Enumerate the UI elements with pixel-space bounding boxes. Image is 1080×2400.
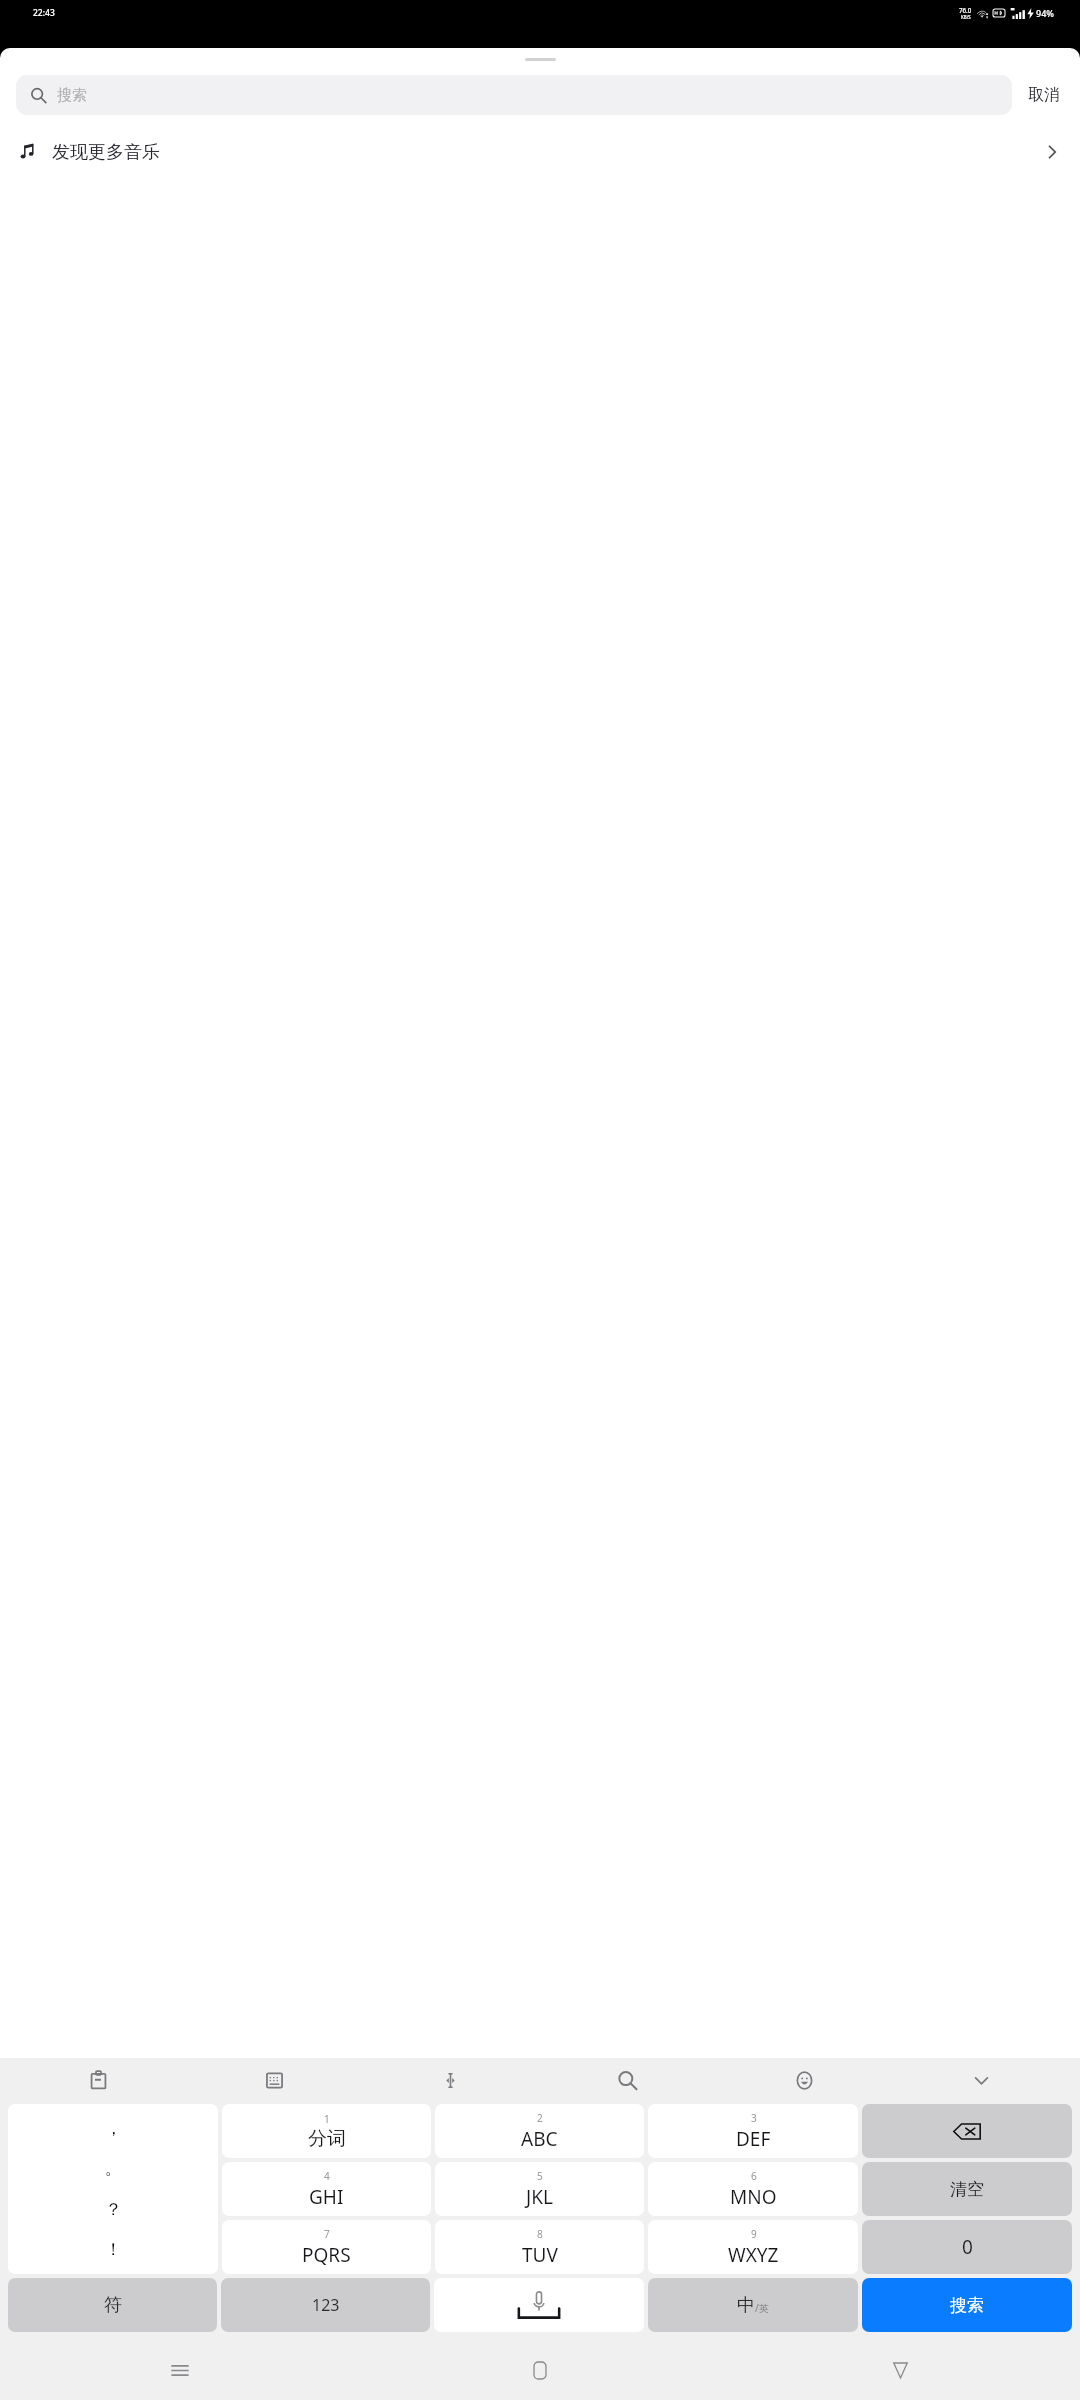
- staticText: 1: [324, 2112, 330, 2126]
- staticText: /英: [755, 2301, 769, 2315]
- button[interactable]: 清空: [862, 2162, 1072, 2216]
- staticText: 94%: [1036, 7, 1054, 19]
- staticText: PQRS: [302, 2242, 351, 2268]
- staticText: 发现更多音乐: [52, 141, 160, 164]
- staticText: 0: [962, 2234, 973, 2260]
- button[interactable]: 取消: [1012, 77, 1064, 113]
- staticText: ，: [105, 2118, 122, 2139]
- staticText: 。: [105, 2158, 122, 2179]
- staticText: 搜索: [57, 86, 87, 105]
- button[interactable]: ，: [8, 2104, 218, 2274]
- button[interactable]: Hide keyboard: [893, 2058, 1070, 2102]
- staticText: 5: [537, 2169, 543, 2183]
- staticText: 6: [751, 2169, 757, 2183]
- button[interactable]: 8: [435, 2220, 644, 2274]
- staticText: 中: [737, 2294, 755, 2317]
- staticText: 符: [104, 2294, 122, 2317]
- button[interactable]: 123: [221, 2278, 430, 2332]
- staticText: 22:43: [33, 7, 55, 19]
- staticText: 分词: [308, 2127, 346, 2151]
- staticText: GHI: [309, 2184, 344, 2210]
- staticText: KB/S: [961, 14, 971, 20]
- button[interactable]: Emoji: [716, 2058, 893, 2102]
- button[interactable]: 2: [435, 2104, 644, 2158]
- staticText: TUV: [522, 2242, 558, 2268]
- button[interactable]: Home: [360, 2340, 720, 2400]
- staticText: 清空: [950, 2179, 984, 2200]
- button[interactable]: 搜索: [862, 2278, 1072, 2332]
- staticText: MNO: [730, 2184, 777, 2210]
- staticText: WXYZ: [728, 2242, 779, 2268]
- staticText: 7: [324, 2227, 330, 2241]
- button[interactable]: 4: [222, 2162, 431, 2216]
- staticText: ！: [105, 2239, 122, 2260]
- staticText: 2: [537, 2111, 543, 2125]
- staticText: ？: [105, 2199, 122, 2220]
- button[interactable]: 0: [862, 2220, 1072, 2274]
- staticText: ABC: [521, 2126, 558, 2152]
- staticText: 8: [537, 2227, 543, 2241]
- staticText: 3: [751, 2111, 757, 2125]
- staticText: 4: [324, 2169, 330, 2183]
- staticText: 取消: [1028, 85, 1060, 105]
- staticText: JKL: [526, 2184, 553, 2210]
- button[interactable]: 5: [435, 2162, 644, 2216]
- staticText: 123: [312, 2294, 340, 2316]
- button[interactable]: 7: [222, 2220, 431, 2274]
- button[interactable]: 9: [648, 2220, 858, 2274]
- staticText: 搜索: [950, 2295, 984, 2316]
- button[interactable]: 中: [648, 2278, 858, 2332]
- button[interactable]: Keyboard settings: [186, 2058, 362, 2102]
- button[interactable]: Move cursor: [362, 2058, 539, 2102]
- button[interactable]: 1: [222, 2104, 431, 2158]
- staticText: DEF: [736, 2126, 771, 2152]
- button[interactable]: Backspace: [862, 2104, 1072, 2158]
- button[interactable]: Space, voice input: [434, 2278, 644, 2332]
- button[interactable]: 3: [648, 2104, 858, 2158]
- button[interactable]: Back: [720, 2340, 1080, 2400]
- button[interactable]: 6: [648, 2162, 858, 2216]
- button[interactable]: Clipboard: [10, 2058, 186, 2102]
- staticText: 9: [751, 2227, 757, 2241]
- button[interactable]: Recents: [0, 2340, 360, 2400]
- button[interactable]: 符: [8, 2278, 217, 2332]
- button[interactable]: 搜索: [16, 75, 1012, 115]
- button[interactable]: Search: [539, 2058, 716, 2102]
- button[interactable]: 发现更多音乐: [0, 129, 1080, 175]
- staticText: 76.0: [959, 6, 972, 14]
